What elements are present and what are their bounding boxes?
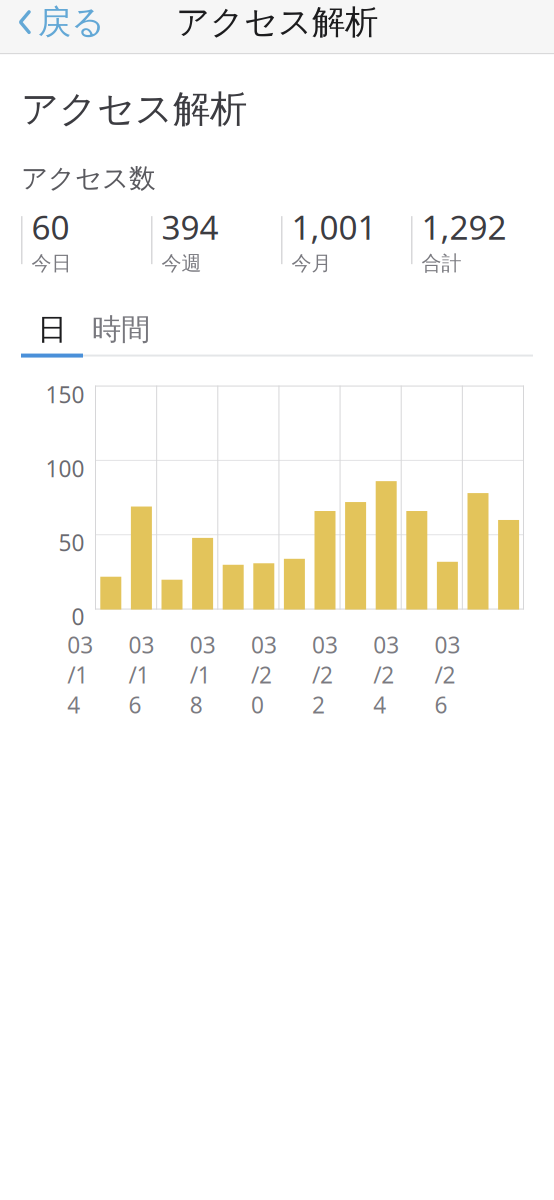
staticText: 今月 xyxy=(291,251,331,276)
staticText: アクセス解析 xyxy=(21,86,247,132)
staticText: 今日 xyxy=(31,251,71,276)
staticText: 戻る xyxy=(38,2,105,43)
staticText: 合計 xyxy=(421,251,461,276)
staticText: 50 xyxy=(58,527,84,558)
button[interactable]: 日 xyxy=(21,312,83,348)
button[interactable]: 戻る xyxy=(0,0,123,53)
staticText: 03/24 xyxy=(373,630,399,720)
staticText: 03/22 xyxy=(312,630,338,720)
staticText: アクセス数 xyxy=(21,162,156,195)
staticText: 60 xyxy=(31,205,69,249)
staticText: 1,292 xyxy=(421,205,506,249)
staticText: 03/14 xyxy=(67,630,93,720)
staticText: 0 xyxy=(71,601,84,632)
staticText: アクセス解析 xyxy=(176,2,378,43)
staticText: 今週 xyxy=(161,251,201,276)
staticText: 時間 xyxy=(92,312,150,348)
staticText: 03/18 xyxy=(190,630,216,720)
staticText: 394 xyxy=(161,205,218,249)
staticText: 03/26 xyxy=(434,630,460,720)
staticText: 100 xyxy=(45,453,84,484)
staticText: 日 xyxy=(37,312,66,348)
staticText: 1,001 xyxy=(291,205,376,249)
staticText: 150 xyxy=(45,379,84,410)
button[interactable]: 時間 xyxy=(83,312,159,348)
staticText: 03/20 xyxy=(251,630,277,720)
staticText: 03/16 xyxy=(128,630,154,720)
